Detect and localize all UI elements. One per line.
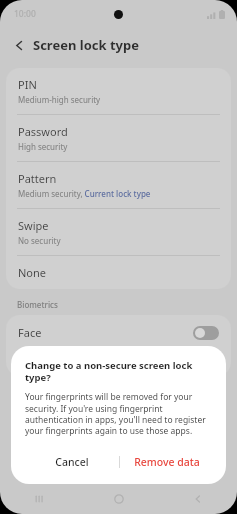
staticText: Screen lock type	[33, 36, 139, 54]
staticText: Medium-high security	[18, 94, 101, 105]
button[interactable]: Back	[158, 484, 237, 514]
button[interactable]: Navigate up	[8, 34, 30, 56]
staticText: Face	[18, 325, 193, 340]
button[interactable]: None	[6, 256, 231, 289]
button[interactable]: Face toggle	[193, 326, 219, 340]
button[interactable]: Password	[6, 115, 231, 161]
button[interactable]: Face	[6, 315, 231, 350]
staticText: PIN	[18, 77, 37, 92]
staticText: Swipe	[18, 218, 49, 233]
staticText: Medium security, Current lock type	[18, 188, 151, 199]
button[interactable]: Recent apps	[0, 484, 79, 514]
staticText: Cancel	[55, 455, 89, 469]
button[interactable]: Swipe	[6, 209, 231, 255]
staticText: Pattern	[18, 171, 57, 186]
staticText: High security	[18, 141, 68, 152]
staticText: 10:00	[14, 8, 36, 20]
button[interactable]: Remove data	[120, 449, 214, 475]
staticText: Change to a non-secure screen lock type?	[25, 359, 214, 384]
staticText: Biometrics	[17, 299, 58, 310]
staticText: No security	[18, 235, 61, 246]
staticText: None	[18, 265, 47, 280]
staticText: Remove data	[134, 455, 200, 469]
staticText: Your fingerprints will be removed for yo…	[25, 391, 214, 437]
staticText: Password	[18, 124, 68, 139]
button[interactable]: Cancel	[25, 449, 119, 475]
button[interactable]: Pattern	[6, 162, 231, 208]
button[interactable]: PIN	[6, 68, 231, 114]
